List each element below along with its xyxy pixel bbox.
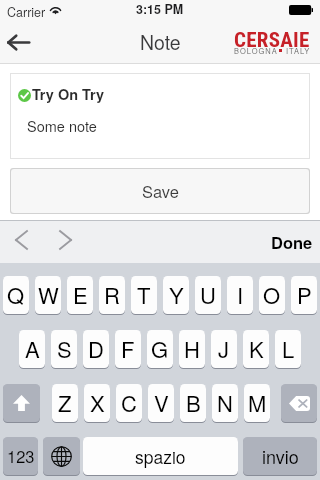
button[interactable]: P — [291, 276, 317, 314]
button[interactable]: R — [99, 276, 125, 314]
staticText: 123 — [7, 444, 35, 468]
button[interactable]: X — [84, 384, 110, 422]
button[interactable]: B — [180, 384, 206, 422]
button[interactable]: invio — [243, 437, 317, 475]
button[interactable]: V — [148, 384, 174, 422]
staticText: C — [121, 387, 137, 419]
staticText: 3:15 PM — [136, 0, 184, 18]
button[interactable]: I — [227, 276, 253, 314]
button[interactable]: Q — [3, 276, 29, 314]
button[interactable]: S — [51, 330, 77, 368]
staticText: Q — [7, 279, 25, 311]
staticText: Try On Try — [32, 84, 105, 105]
staticText: Some note — [27, 115, 97, 136]
staticText: R — [104, 279, 120, 311]
button[interactable]: Done — [271, 230, 313, 254]
staticText: U — [200, 279, 216, 311]
staticText: P — [297, 279, 312, 311]
staticText: L — [282, 333, 295, 365]
staticText: D — [88, 333, 104, 365]
staticText: ITALY — [286, 45, 311, 56]
button[interactable]: Y — [163, 276, 189, 314]
staticText: K — [249, 333, 264, 365]
button[interactable]: A — [19, 330, 45, 368]
staticText: G — [151, 333, 169, 365]
button[interactable]: D — [83, 330, 109, 368]
button[interactable]: M — [244, 384, 270, 422]
button[interactable]: K — [243, 330, 269, 368]
button[interactable]: U — [195, 276, 221, 314]
button[interactable]: C — [116, 384, 142, 422]
staticText: CERSAIE — [234, 28, 310, 53]
button[interactable]: Previous field — [5, 224, 37, 256]
button[interactable]: Save — [10, 168, 310, 214]
button[interactable]: N — [212, 384, 238, 422]
staticText: V — [154, 387, 169, 419]
button[interactable]: H — [179, 330, 205, 368]
button[interactable]: F — [115, 330, 141, 368]
button[interactable]: Z — [52, 384, 78, 422]
staticText: F — [121, 333, 135, 365]
staticText: invio — [262, 443, 299, 469]
staticText: B — [186, 387, 201, 419]
button[interactable]: Backspace — [281, 384, 317, 422]
button[interactable]: W — [35, 276, 61, 314]
staticText: J — [218, 333, 230, 365]
staticText: Note — [140, 28, 181, 56]
staticText: O — [263, 279, 281, 311]
staticText: X — [90, 387, 105, 419]
staticText: A — [25, 333, 40, 365]
button[interactable]: 123 — [3, 437, 38, 475]
button[interactable]: Switch keyboard — [43, 437, 80, 475]
staticText: Done — [271, 230, 313, 254]
button[interactable]: E — [67, 276, 93, 314]
button[interactable]: L — [275, 330, 301, 368]
button[interactable]: G — [147, 330, 173, 368]
button[interactable]: J — [211, 330, 237, 368]
staticText: Carrier — [7, 3, 46, 21]
button[interactable]: Shift — [3, 384, 40, 422]
staticText: N — [217, 387, 233, 419]
button[interactable]: T — [131, 276, 157, 314]
staticText: I — [237, 279, 244, 311]
staticText: Save — [142, 179, 179, 203]
staticText: S — [57, 333, 72, 365]
staticText: M — [248, 387, 267, 419]
staticText: E — [73, 279, 88, 311]
staticText: Z — [58, 387, 72, 419]
staticText: W — [38, 279, 59, 311]
staticText: Y — [169, 279, 184, 311]
button[interactable]: O — [259, 276, 285, 314]
staticText: BOLOGNA — [234, 45, 278, 56]
button[interactable]: Back — [0, 24, 36, 60]
staticText: T — [137, 279, 151, 311]
button[interactable]: Next field — [49, 224, 81, 256]
staticText: spazio — [135, 444, 186, 469]
button[interactable]: spazio — [83, 437, 238, 475]
staticText: H — [184, 333, 200, 365]
